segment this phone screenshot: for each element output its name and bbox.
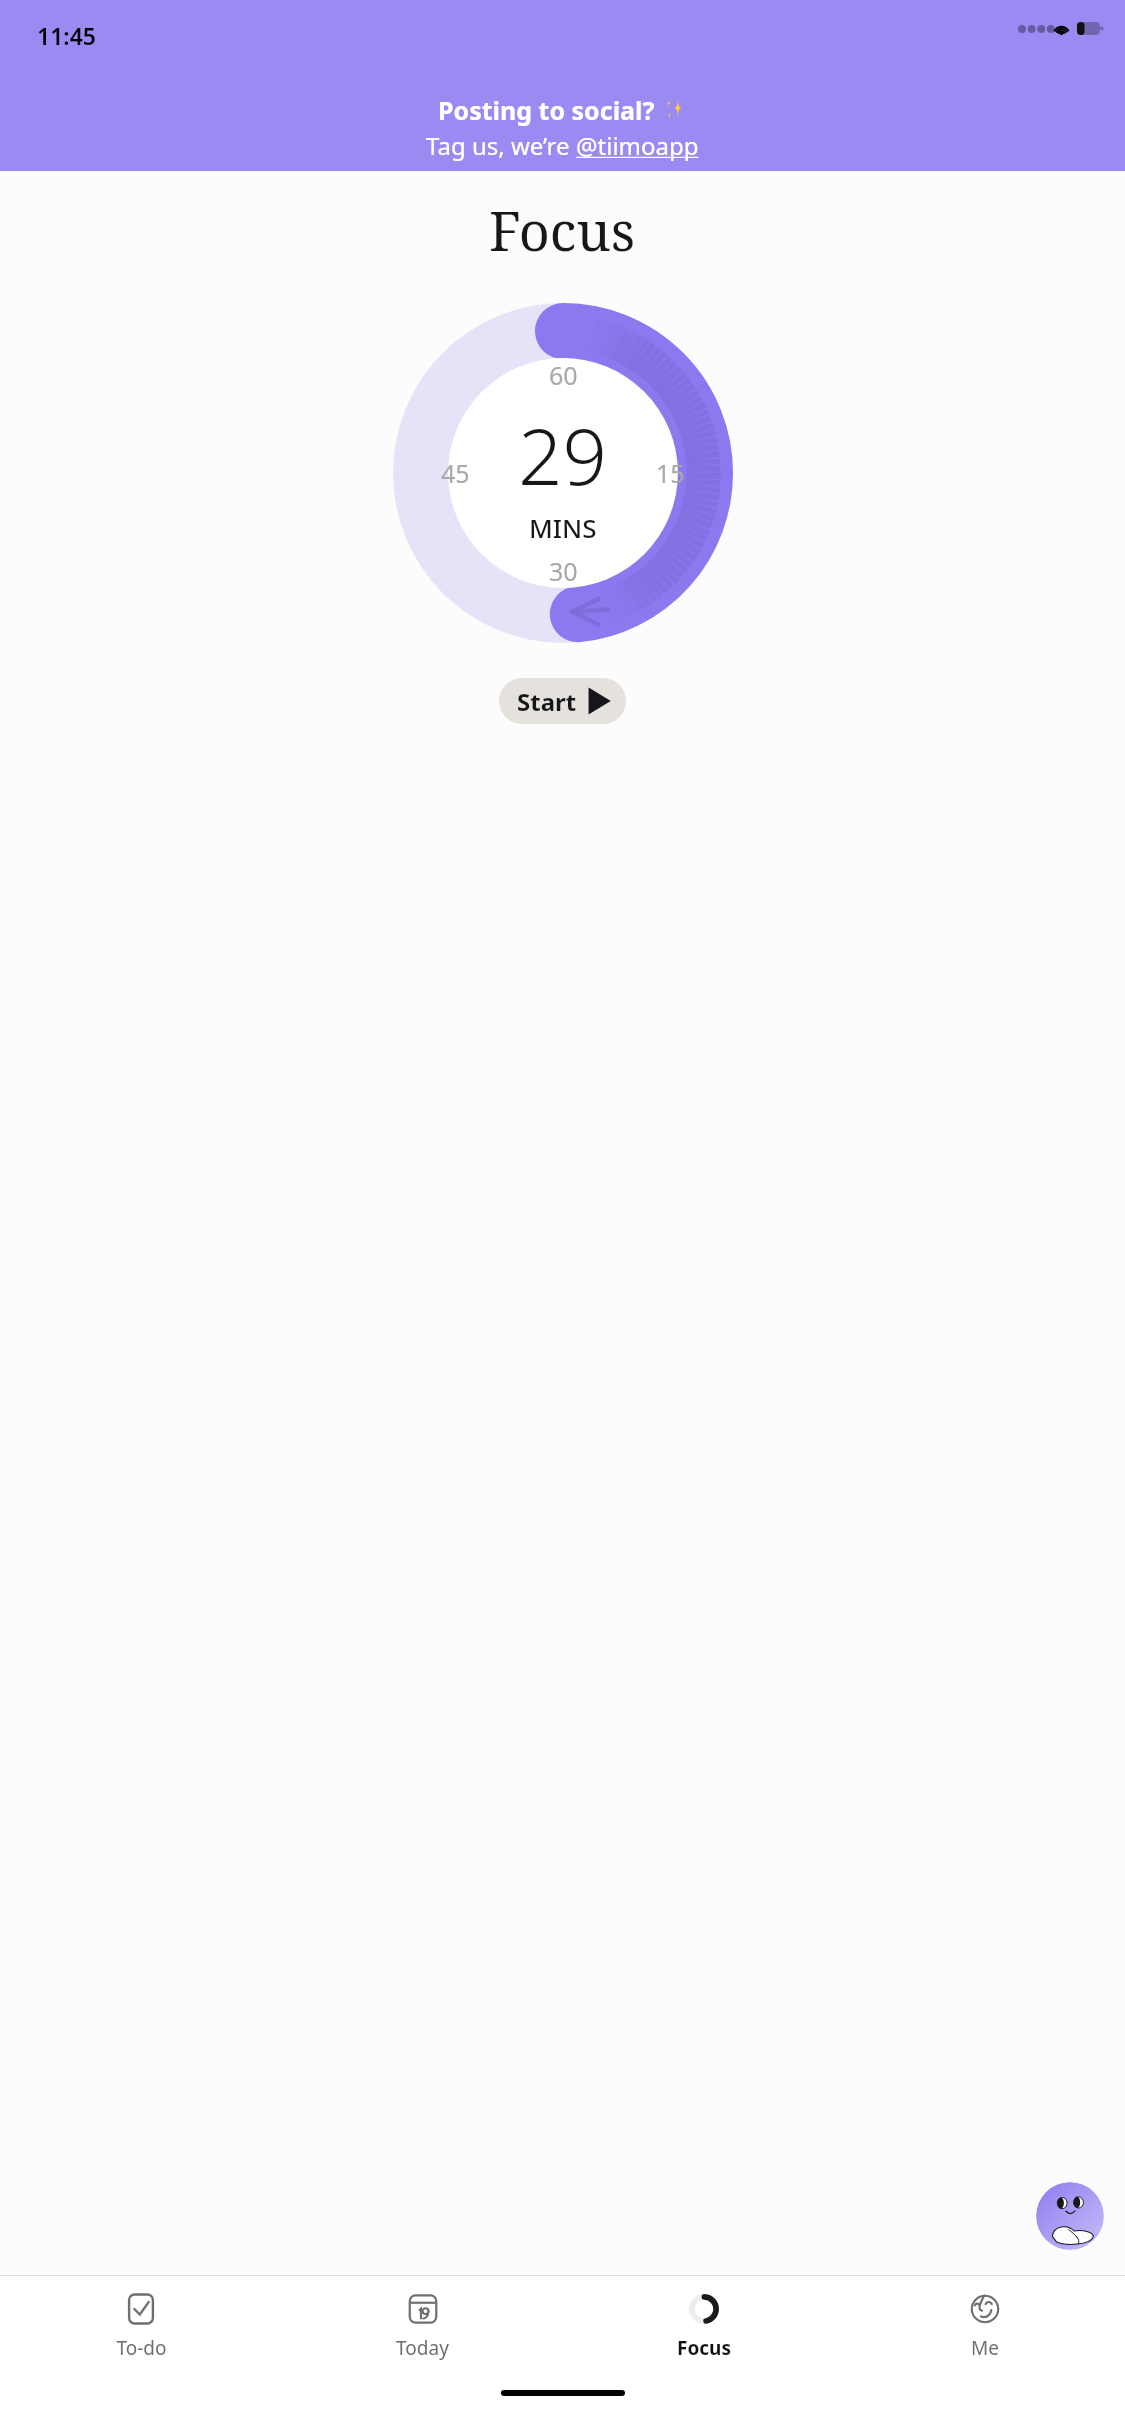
staticText: 11:45 [37, 20, 96, 51]
staticText: Focus [489, 193, 636, 267]
staticText: 29 [518, 402, 608, 508]
staticText: Posting to social? [438, 93, 655, 127]
button[interactable]: Start [499, 678, 626, 724]
staticText: 30 [549, 554, 578, 588]
button[interactable]: To-do [0, 2276, 282, 2361]
button[interactable]: Tiimo assistant [1036, 2182, 1104, 2250]
staticText: 45 [441, 456, 470, 490]
button[interactable]: Today [282, 2276, 563, 2361]
staticText: Tag us, we’re [426, 129, 576, 162]
button[interactable]: Me [844, 2276, 1125, 2361]
staticText: Start [517, 685, 577, 718]
staticText: 15 [656, 456, 685, 490]
staticText: 60 [549, 358, 578, 392]
staticText: MINS [529, 510, 597, 545]
staticText: Me [971, 2335, 999, 2361]
staticText: Focus [677, 2335, 731, 2361]
staticText: To-do [116, 2335, 167, 2361]
button[interactable]: @tiimoapp [576, 129, 699, 162]
button[interactable]: Focus [563, 2276, 844, 2361]
staticText: Today [396, 2335, 449, 2361]
